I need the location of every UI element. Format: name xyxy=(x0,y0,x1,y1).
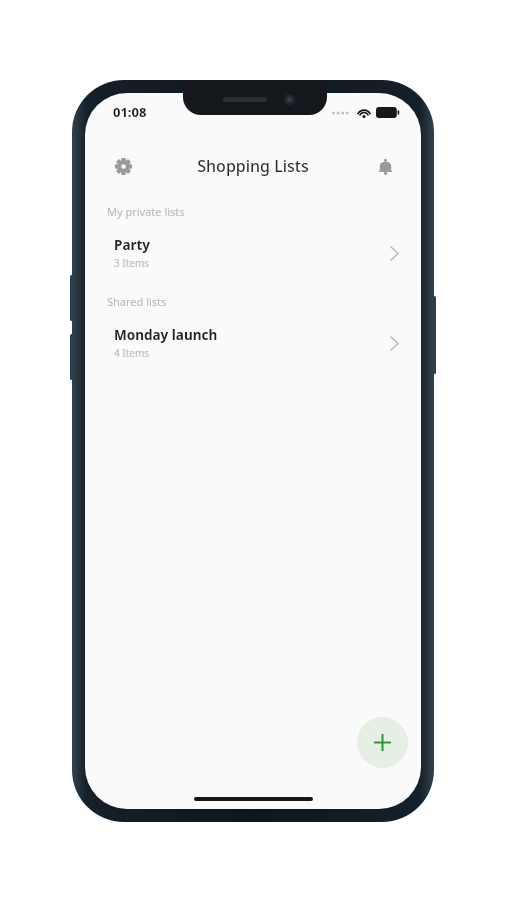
staticText: My private lists xyxy=(107,204,185,219)
button[interactable]: Add list xyxy=(357,717,408,768)
button[interactable]: Party xyxy=(85,232,421,274)
button[interactable]: Settings xyxy=(103,146,143,186)
staticText: 4 Items xyxy=(114,346,150,360)
staticText: Shared lists xyxy=(107,294,167,309)
button[interactable]: Notifications xyxy=(365,146,405,186)
staticText: Monday launch xyxy=(114,326,218,344)
staticText: Party xyxy=(114,236,151,254)
button[interactable]: Monday launch xyxy=(85,322,421,364)
staticText: 01:08 xyxy=(113,103,147,121)
staticText: 3 Items xyxy=(114,256,150,270)
staticText: Shopping Lists xyxy=(197,155,309,177)
